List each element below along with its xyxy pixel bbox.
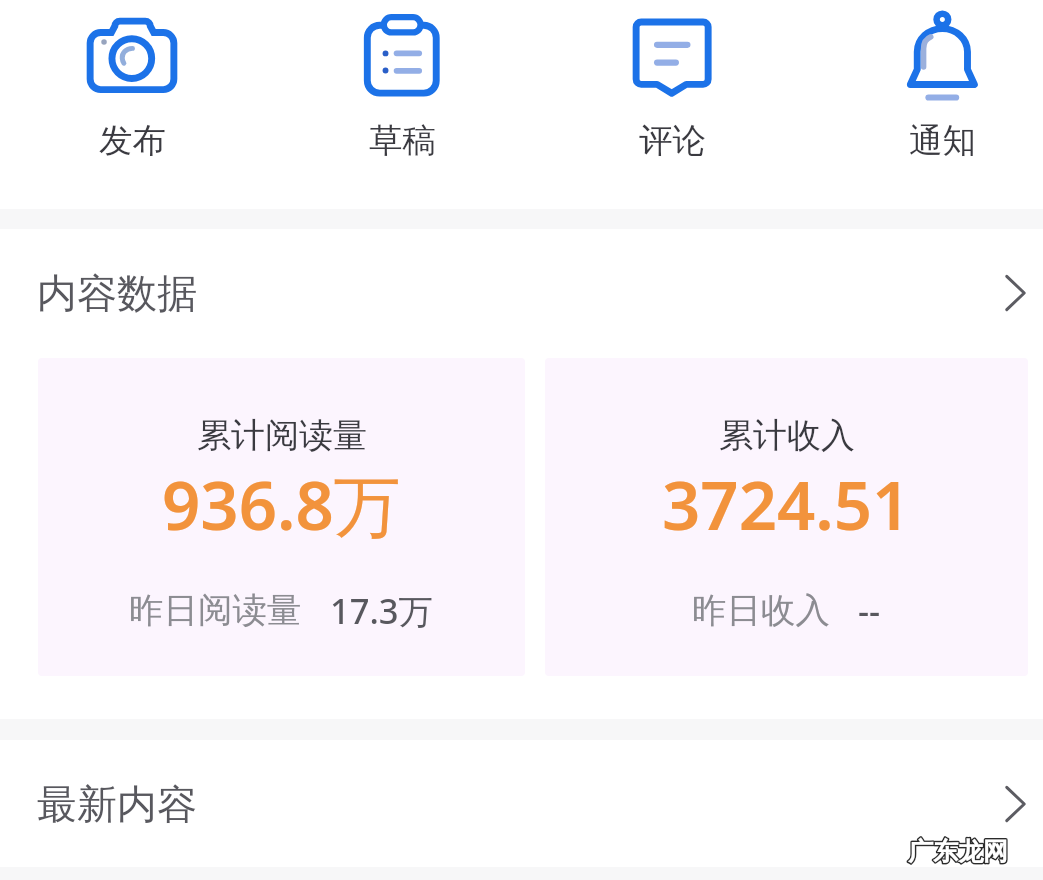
other: 发布 xyxy=(86,10,178,102)
other: 草稿 xyxy=(356,10,448,102)
staticText: 通知 xyxy=(909,120,976,162)
button[interactable]: 最新内容 xyxy=(0,764,1043,844)
staticText: -- xyxy=(858,587,881,634)
staticText: 内容数据 xyxy=(37,268,197,318)
other: 通知 xyxy=(896,10,988,102)
staticText: 3724.51 xyxy=(662,458,911,549)
staticText: 评论 xyxy=(639,120,706,162)
staticText: 昨日阅读量 xyxy=(129,589,302,632)
button[interactable]: 发布 xyxy=(57,0,207,162)
staticText: 累计收入 xyxy=(719,414,855,457)
staticText: 广东龙网 xyxy=(908,836,1008,867)
button[interactable]: 累计收入 xyxy=(545,358,1028,676)
button[interactable]: 内容数据 xyxy=(0,253,1043,333)
staticText: 17.3万 xyxy=(330,587,434,634)
staticText: 发布 xyxy=(99,120,166,162)
other: 评论 xyxy=(626,10,718,102)
staticText: 昨日收入 xyxy=(692,589,830,632)
button[interactable]: 累计阅读量 xyxy=(38,358,525,676)
button[interactable]: 评论 xyxy=(597,0,747,162)
button[interactable]: 通知 xyxy=(867,0,1017,162)
staticText: 936.8万 xyxy=(162,458,401,550)
staticText: 广东龙网 xyxy=(908,836,1008,867)
staticText: 最新内容 xyxy=(37,779,197,829)
button[interactable]: 草稿 xyxy=(327,0,477,162)
staticText: 累计阅读量 xyxy=(197,414,367,457)
staticText: 草稿 xyxy=(369,120,436,162)
